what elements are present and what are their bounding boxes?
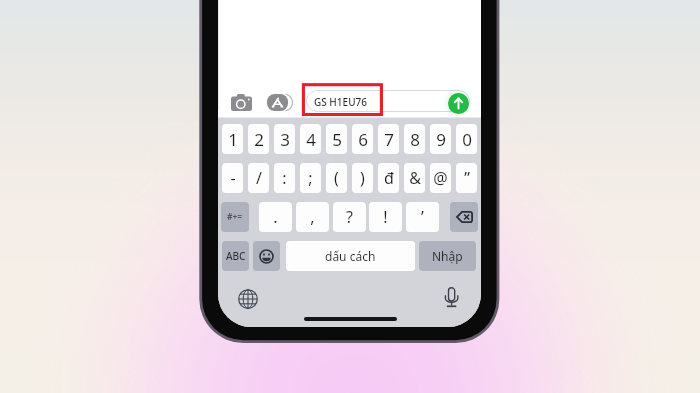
button[interactable]: 3 (274, 124, 295, 154)
button[interactable]: @ (430, 163, 451, 193)
staticText: 6 (358, 128, 368, 151)
button[interactable]: 2 (248, 124, 269, 154)
button[interactable]: ABC (222, 241, 249, 271)
staticText: & (409, 167, 421, 189)
button[interactable]: 6 (352, 124, 373, 154)
staticText: 3 (280, 128, 290, 151)
button[interactable]: GS H1EU76 (306, 90, 470, 112)
button[interactable]: 9 (430, 124, 451, 154)
button[interactable]: 5 (326, 124, 347, 154)
button[interactable]: ( (326, 163, 347, 193)
button[interactable]: App Store (267, 94, 288, 111)
button[interactable]: . (259, 202, 292, 232)
button[interactable]: / (248, 163, 269, 193)
staticText: - (230, 167, 236, 189)
staticText: . (273, 206, 278, 228)
button[interactable]: Nhập (419, 241, 476, 271)
staticText: @ (433, 167, 448, 189)
staticText: ? (346, 206, 353, 228)
button[interactable]: 1 (222, 124, 243, 154)
button[interactable]: ! (369, 202, 402, 232)
staticText: 4 (306, 128, 316, 151)
staticText: 2 (254, 128, 264, 151)
button[interactable]: Camera (231, 94, 252, 111)
button[interactable]: #+= (221, 202, 249, 232)
staticText: ) (360, 167, 365, 189)
button[interactable]: ) (352, 163, 373, 193)
staticText: Nhập (432, 248, 463, 264)
staticText: ! (383, 206, 388, 228)
staticText: 7 (384, 128, 394, 151)
button[interactable]: 7 (378, 124, 399, 154)
staticText: ( (334, 167, 339, 189)
staticText: / (256, 167, 262, 189)
staticText: dấu cách (325, 248, 376, 264)
staticText: ABC (226, 249, 246, 263)
button[interactable]: Emoji (253, 241, 280, 271)
staticText: , (310, 206, 315, 228)
button[interactable]: Send (448, 93, 469, 114)
staticText: 1 (228, 128, 238, 151)
button[interactable]: , (296, 202, 329, 232)
button[interactable]: Backspace (450, 202, 478, 232)
button[interactable]: Change keyboard (238, 289, 258, 309)
button[interactable]: - (222, 163, 243, 193)
staticText: ’ (421, 206, 424, 228)
button[interactable]: ; (300, 163, 321, 193)
button[interactable]: 4 (300, 124, 321, 154)
button[interactable]: 8 (404, 124, 425, 154)
staticText: GS H1EU76 (314, 95, 367, 109)
button[interactable]: : (274, 163, 295, 193)
staticText: 0 (462, 128, 472, 151)
button[interactable]: & (404, 163, 425, 193)
staticText: đ (384, 167, 394, 189)
staticText: 9 (436, 128, 446, 151)
staticText: 8 (410, 128, 420, 151)
button[interactable]: ” (456, 163, 477, 193)
staticText: ” (464, 167, 470, 189)
staticText: 5 (332, 128, 342, 151)
button[interactable]: ’ (406, 202, 439, 232)
staticText: #+= (227, 211, 243, 223)
staticText: ; (308, 167, 313, 189)
button[interactable]: Dictation (444, 287, 459, 309)
button[interactable]: ? (333, 202, 366, 232)
button[interactable]: 0 (456, 124, 477, 154)
button[interactable]: đ (378, 163, 399, 193)
staticText: : (282, 167, 287, 189)
button[interactable]: dấu cách (286, 241, 415, 271)
